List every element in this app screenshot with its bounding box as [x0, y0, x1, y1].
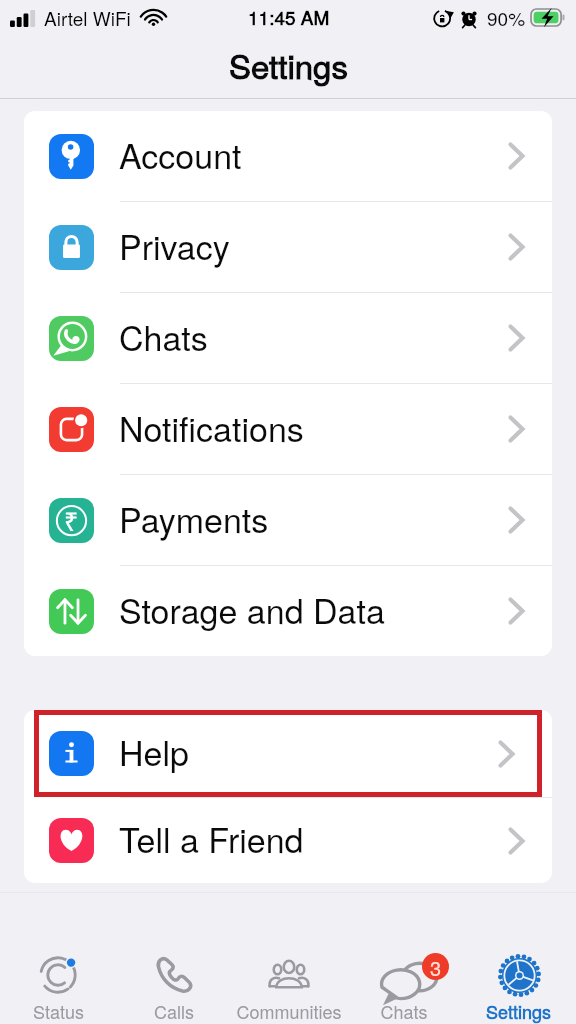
button[interactable]: Notifications	[24, 384, 552, 474]
staticText: Account	[119, 130, 242, 179]
staticText: Chats	[119, 312, 208, 361]
button[interactable]: Chats	[24, 293, 552, 383]
button[interactable]: Help	[34, 710, 542, 797]
staticText: Calls	[154, 998, 194, 1024]
staticText: Settings	[229, 41, 348, 88]
staticText: Settings	[486, 998, 551, 1024]
button[interactable]: Tell a Friend	[24, 798, 552, 883]
staticText: Payments	[119, 494, 269, 543]
staticText: ₹	[64, 504, 79, 538]
other: Calls	[153, 954, 195, 996]
staticText: Chats	[380, 998, 428, 1024]
staticText: Storage and Data	[119, 585, 385, 634]
other: Status	[38, 955, 78, 995]
button[interactable]: Settings	[461, 893, 576, 1024]
other: Settings	[498, 954, 541, 997]
button[interactable]: Privacy	[24, 202, 552, 292]
staticText: Status	[33, 998, 84, 1024]
staticText: 11:45 AM	[248, 3, 330, 30]
button[interactable]: Status	[0, 893, 116, 1024]
staticText: Help	[119, 727, 189, 776]
staticText: Airtel WiFi	[44, 4, 131, 31]
button[interactable]: Account	[24, 111, 552, 201]
staticText: Notifications	[119, 403, 304, 452]
other: Chats	[371, 953, 449, 1007]
button[interactable]: Storage and Data	[24, 566, 552, 656]
other: Communities	[264, 950, 314, 1000]
staticText: 3	[430, 953, 442, 980]
staticText: 90%	[487, 4, 526, 31]
button[interactable]: Chats	[346, 893, 461, 1024]
button[interactable]: ₹	[24, 475, 552, 565]
staticText: Privacy	[119, 221, 230, 270]
button[interactable]: Communities	[231, 893, 346, 1024]
button[interactable]: Calls	[116, 893, 231, 1024]
staticText: Tell a Friend	[119, 814, 304, 863]
staticText: Communities	[236, 998, 342, 1024]
